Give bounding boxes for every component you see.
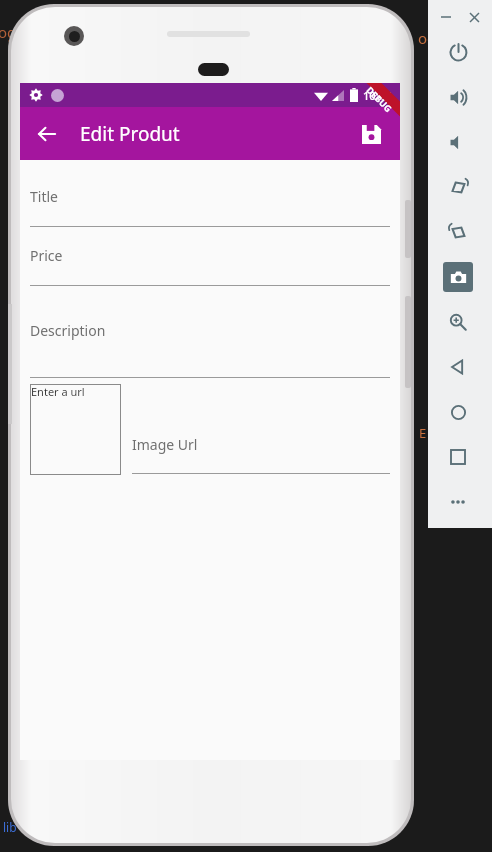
staticText: E bbox=[419, 424, 427, 442]
button[interactable]: Rotate left bbox=[443, 172, 473, 202]
button[interactable]: Power bbox=[443, 37, 473, 67]
button[interactable]: Back bbox=[443, 352, 473, 382]
button[interactable]: Enter a url bbox=[30, 384, 121, 475]
staticText: Image Url bbox=[132, 435, 198, 454]
button[interactable]: Back bbox=[27, 114, 67, 154]
button[interactable]: Rotate right bbox=[443, 217, 473, 247]
staticText: DEBUG bbox=[364, 84, 395, 114]
button[interactable]: Zoom bbox=[443, 307, 473, 337]
button[interactable]: Screenshot bbox=[443, 262, 473, 292]
button[interactable]: Price bbox=[30, 227, 390, 286]
button[interactable]: Overview bbox=[443, 442, 473, 472]
staticText: Title bbox=[30, 187, 58, 206]
button[interactable]: Close bbox=[465, 8, 483, 26]
staticText: 10:47 bbox=[363, 88, 392, 103]
button[interactable]: Minimize bbox=[437, 8, 455, 26]
button[interactable]: Volume down bbox=[443, 127, 473, 157]
staticText: og bbox=[418, 28, 437, 48]
staticText: Edit Produt bbox=[80, 121, 180, 147]
staticText: Price bbox=[30, 246, 63, 265]
button[interactable]: Title bbox=[30, 187, 390, 227]
button[interactable]: More bbox=[443, 487, 473, 517]
button[interactable]: Save bbox=[351, 114, 391, 154]
button[interactable]: Volume up bbox=[443, 82, 473, 112]
staticText: og bbox=[0, 22, 17, 42]
staticText: Description bbox=[30, 321, 106, 340]
button[interactable]: Home bbox=[443, 397, 473, 427]
staticText: Enter a url bbox=[31, 384, 85, 399]
button[interactable]: Description bbox=[30, 286, 390, 378]
staticText: lib bbox=[3, 819, 17, 835]
